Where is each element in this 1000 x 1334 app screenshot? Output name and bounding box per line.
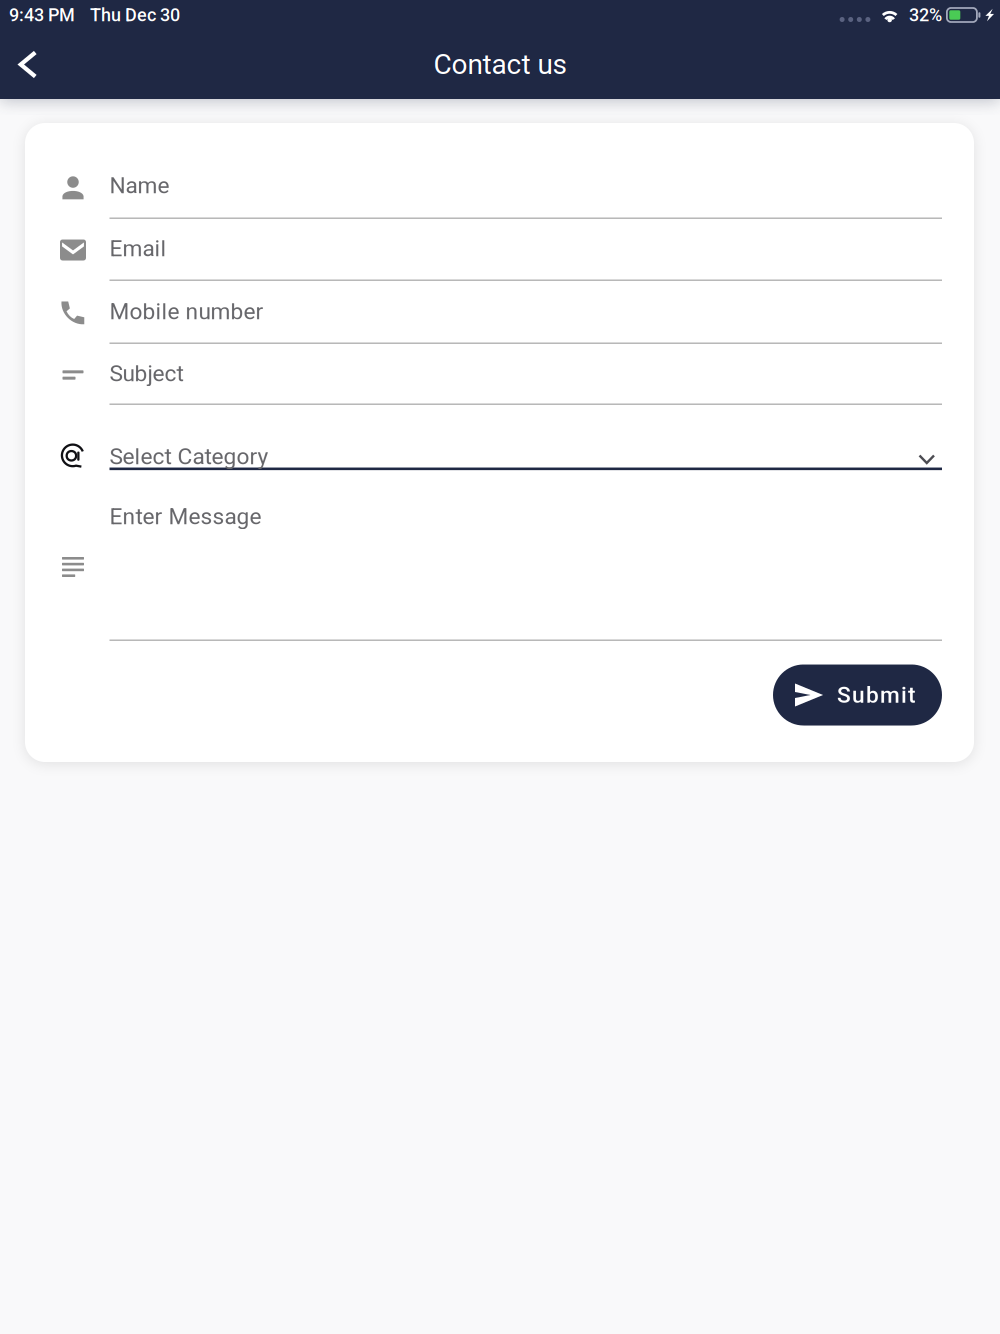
- staticText: Thu Dec 30: [90, 4, 180, 26]
- staticText: Subject: [109, 360, 183, 387]
- staticText: Email: [109, 235, 166, 262]
- button[interactable]: Back: [0, 30, 56, 99]
- staticText: Select Category: [109, 443, 268, 470]
- staticText: Name: [109, 172, 169, 199]
- button[interactable]: Submit: [773, 664, 942, 725]
- staticText: 9:43 PM: [9, 4, 75, 26]
- staticText: Mobile number: [109, 298, 263, 325]
- staticText: Contact us: [433, 48, 566, 81]
- staticText: Enter Message: [109, 503, 261, 530]
- staticText: Submit: [837, 682, 916, 708]
- staticText: 32%: [909, 4, 942, 26]
